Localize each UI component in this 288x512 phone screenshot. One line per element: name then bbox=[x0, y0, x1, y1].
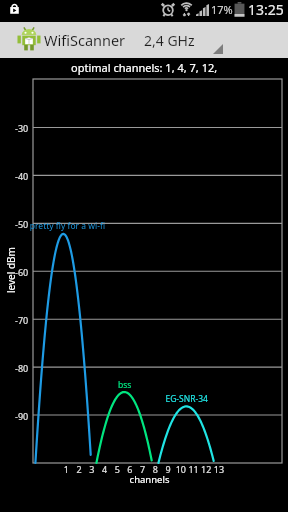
button[interactable]: WifiScanner bbox=[0, 22, 288, 58]
other: Play Store notification bbox=[8, 2, 21, 16]
staticText: 2,4 GHz bbox=[144, 31, 195, 50]
staticText: 17% bbox=[211, 2, 233, 17]
staticText: 13:25 bbox=[248, 0, 284, 19]
button[interactable]: 2,4 GHz bbox=[144, 31, 195, 50]
staticText: WifiScanner bbox=[44, 30, 126, 50]
button[interactable]: Open band selector bbox=[213, 44, 223, 54]
